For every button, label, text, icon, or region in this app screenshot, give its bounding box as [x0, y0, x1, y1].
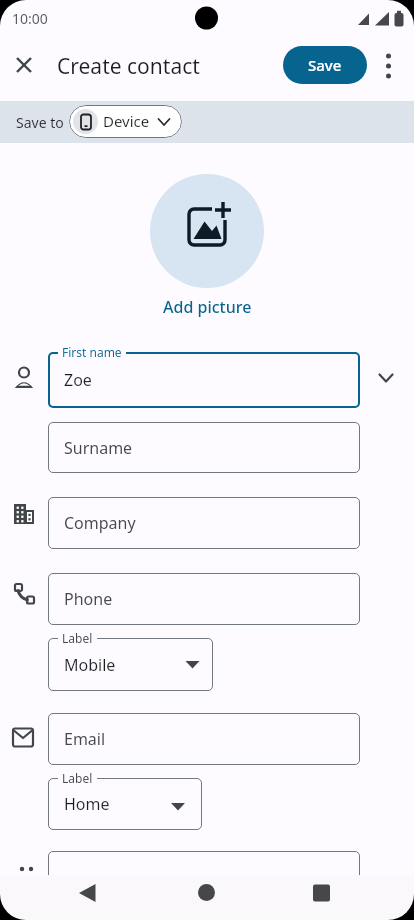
staticText: Zoe: [64, 369, 92, 391]
button[interactable]: Phone: [48, 573, 360, 625]
button[interactable]: Home: [48, 778, 202, 830]
button[interactable]: [150, 174, 264, 288]
button[interactable]: [8, 57, 40, 89]
staticText: Mobile: [64, 654, 116, 676]
staticText: Label: [62, 630, 93, 646]
staticText: First name: [62, 344, 122, 360]
staticText: Label: [62, 770, 93, 786]
button[interactable]: [372, 364, 400, 392]
button[interactable]: [305, 877, 337, 909]
staticText: Device: [103, 111, 150, 131]
staticText: Company: [64, 512, 136, 534]
button[interactable]: Zoe: [48, 352, 360, 408]
button[interactable]: [190, 877, 222, 909]
staticText: Save: [308, 55, 342, 75]
staticText: Home: [64, 793, 110, 815]
button[interactable]: Email: [48, 713, 360, 765]
button[interactable]: [71, 877, 103, 909]
button[interactable]: Surname: [48, 422, 360, 473]
staticText: Add picture: [163, 296, 252, 318]
staticText: Surname: [64, 437, 133, 459]
staticText: 10:00: [12, 9, 48, 28]
button[interactable]: Add picture: [163, 296, 252, 318]
button[interactable]: Company: [48, 497, 360, 549]
staticText: Phone: [64, 588, 113, 610]
staticText: Email: [64, 728, 106, 750]
button[interactable]: [48, 851, 360, 891]
button[interactable]: [377, 54, 401, 78]
button[interactable]: Save: [283, 46, 367, 84]
staticText: Save to: [16, 113, 64, 132]
button[interactable]: Mobile: [48, 638, 213, 691]
button[interactable]: Device: [69, 105, 182, 138]
staticText: Create contact: [57, 52, 200, 81]
